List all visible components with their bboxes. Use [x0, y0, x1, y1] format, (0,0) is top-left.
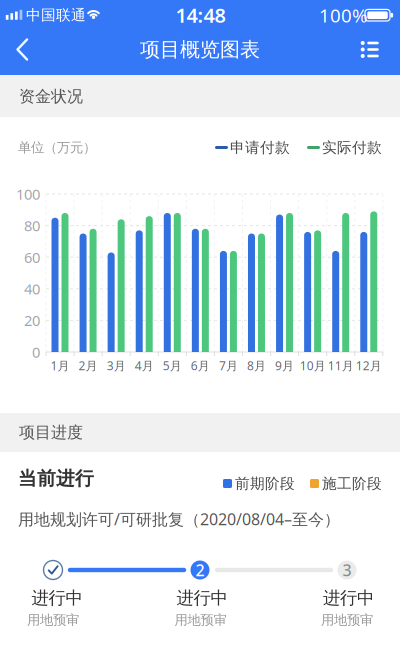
staticText: 前期阶段: [235, 474, 295, 492]
staticText: 3月: [107, 357, 126, 373]
staticText: 3: [342, 559, 351, 581]
staticText: 实际付款: [322, 138, 382, 156]
staticText: 用地预审: [174, 612, 226, 628]
staticText: 4月: [135, 357, 154, 373]
staticText: 单位（万元）: [18, 139, 96, 156]
staticText: 进行中: [323, 587, 374, 609]
staticText: 进行中: [31, 587, 82, 609]
staticText: 2月: [79, 357, 98, 373]
staticText: 项目概览图表: [140, 37, 260, 62]
staticText: 2: [195, 559, 204, 581]
staticText: 当前进行: [18, 467, 94, 490]
staticText: 80: [24, 216, 40, 235]
staticText: 100%: [319, 3, 368, 28]
staticText: 6月: [191, 357, 210, 373]
staticText: 11月: [328, 357, 354, 373]
staticText: 12月: [356, 357, 382, 373]
staticText: 10月: [300, 357, 326, 373]
staticText: 0: [32, 342, 40, 362]
staticText: 1月: [50, 357, 69, 373]
staticText: 用地预审: [27, 612, 79, 628]
button[interactable]: Menu: [344, 25, 388, 75]
staticText: 60: [24, 247, 40, 267]
staticText: 14:48: [175, 2, 225, 28]
staticText: 资金状况: [19, 87, 83, 106]
staticText: 40: [24, 279, 40, 299]
staticText: 用地预审: [321, 612, 373, 628]
staticText: 用地规划许可/可研批复（2020/08/04–至今）: [18, 508, 340, 530]
staticText: 100: [16, 184, 40, 204]
staticText: 中国联通: [26, 6, 86, 24]
staticText: 进行中: [176, 587, 227, 609]
staticText: 施工阶段: [322, 474, 382, 492]
staticText: 5月: [163, 357, 182, 373]
staticText: 9月: [275, 357, 294, 373]
button[interactable]: Back: [4, 25, 48, 75]
staticText: 20: [24, 311, 40, 330]
staticText: 项目进度: [19, 423, 83, 442]
staticText: 申请付款: [230, 138, 290, 156]
staticText: 7月: [219, 357, 238, 373]
staticText: 8月: [247, 357, 266, 373]
